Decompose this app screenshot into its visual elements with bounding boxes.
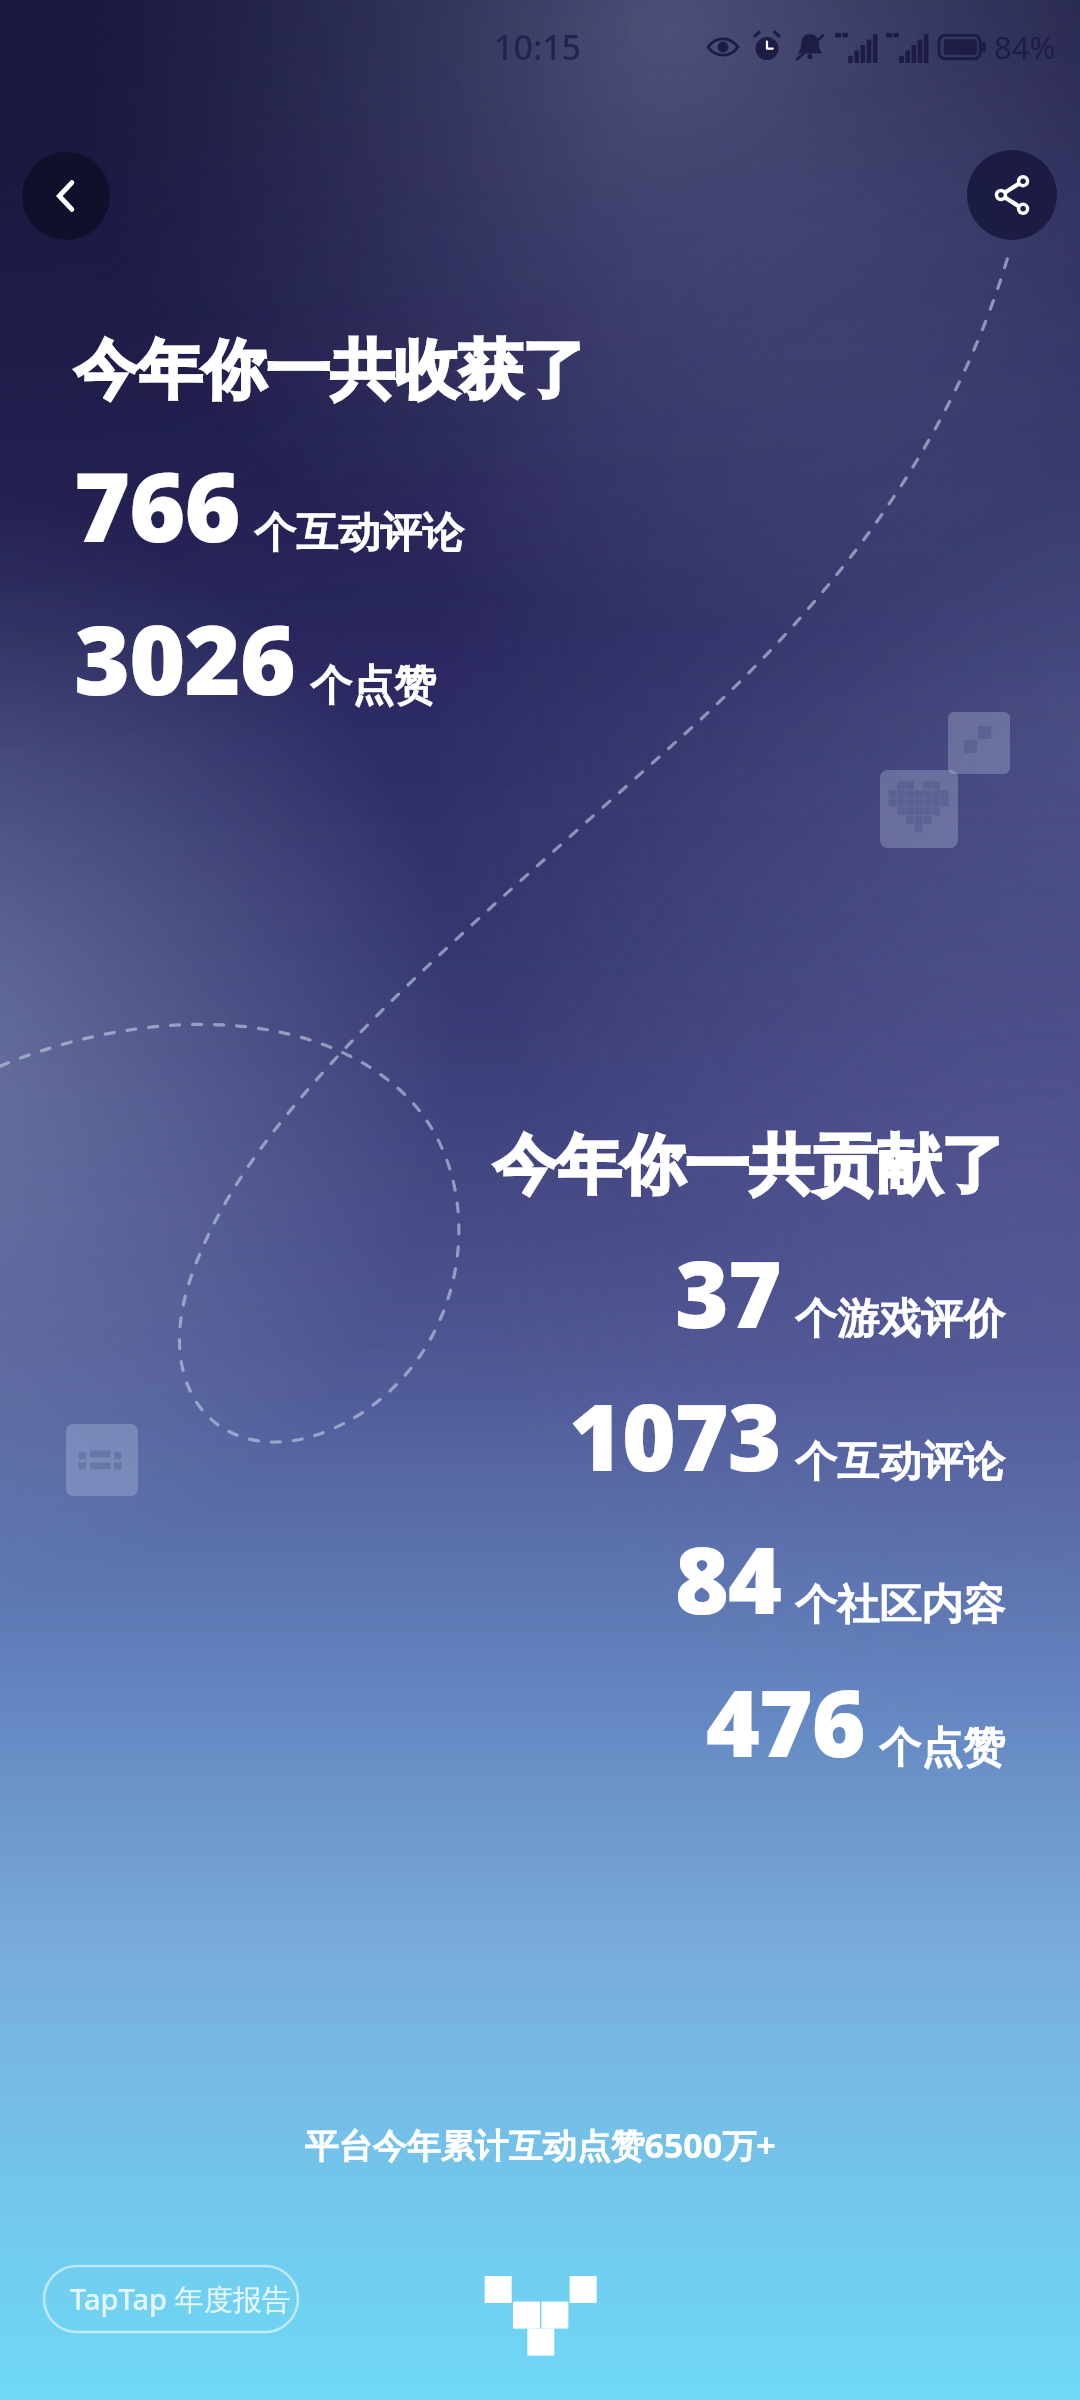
staticText: 个点赞 (310, 660, 436, 713)
staticText: 今年你一共收获了 (74, 330, 586, 411)
staticText: 个互动评论 (795, 1436, 1005, 1489)
staticText: TapTap 年度报告 (70, 2279, 291, 2319)
button[interactable]: Back (22, 152, 110, 240)
staticText: 今年你一共贡献了 (493, 1125, 1005, 1206)
staticText: 10:15 (494, 24, 582, 70)
staticText: 个游戏评价 (795, 1293, 1005, 1346)
staticText: 37 (675, 1230, 781, 1355)
staticText: 个点赞 (879, 1722, 1005, 1775)
staticText: 84% (994, 26, 1056, 68)
staticText: 766 (74, 439, 240, 570)
staticText: 个互动评论 (254, 507, 464, 560)
staticText: 476 (706, 1659, 865, 1784)
staticText: 3026 (74, 592, 296, 723)
staticText: 84 (675, 1516, 781, 1641)
staticText: 1073 (569, 1373, 781, 1498)
button[interactable]: TapTap 年度报告 (44, 2266, 317, 2332)
staticText: 个社区内容 (795, 1579, 1005, 1632)
staticText: 平台今年累计互动点赞6500万+ (304, 2122, 776, 2168)
button[interactable]: Share (967, 150, 1057, 240)
